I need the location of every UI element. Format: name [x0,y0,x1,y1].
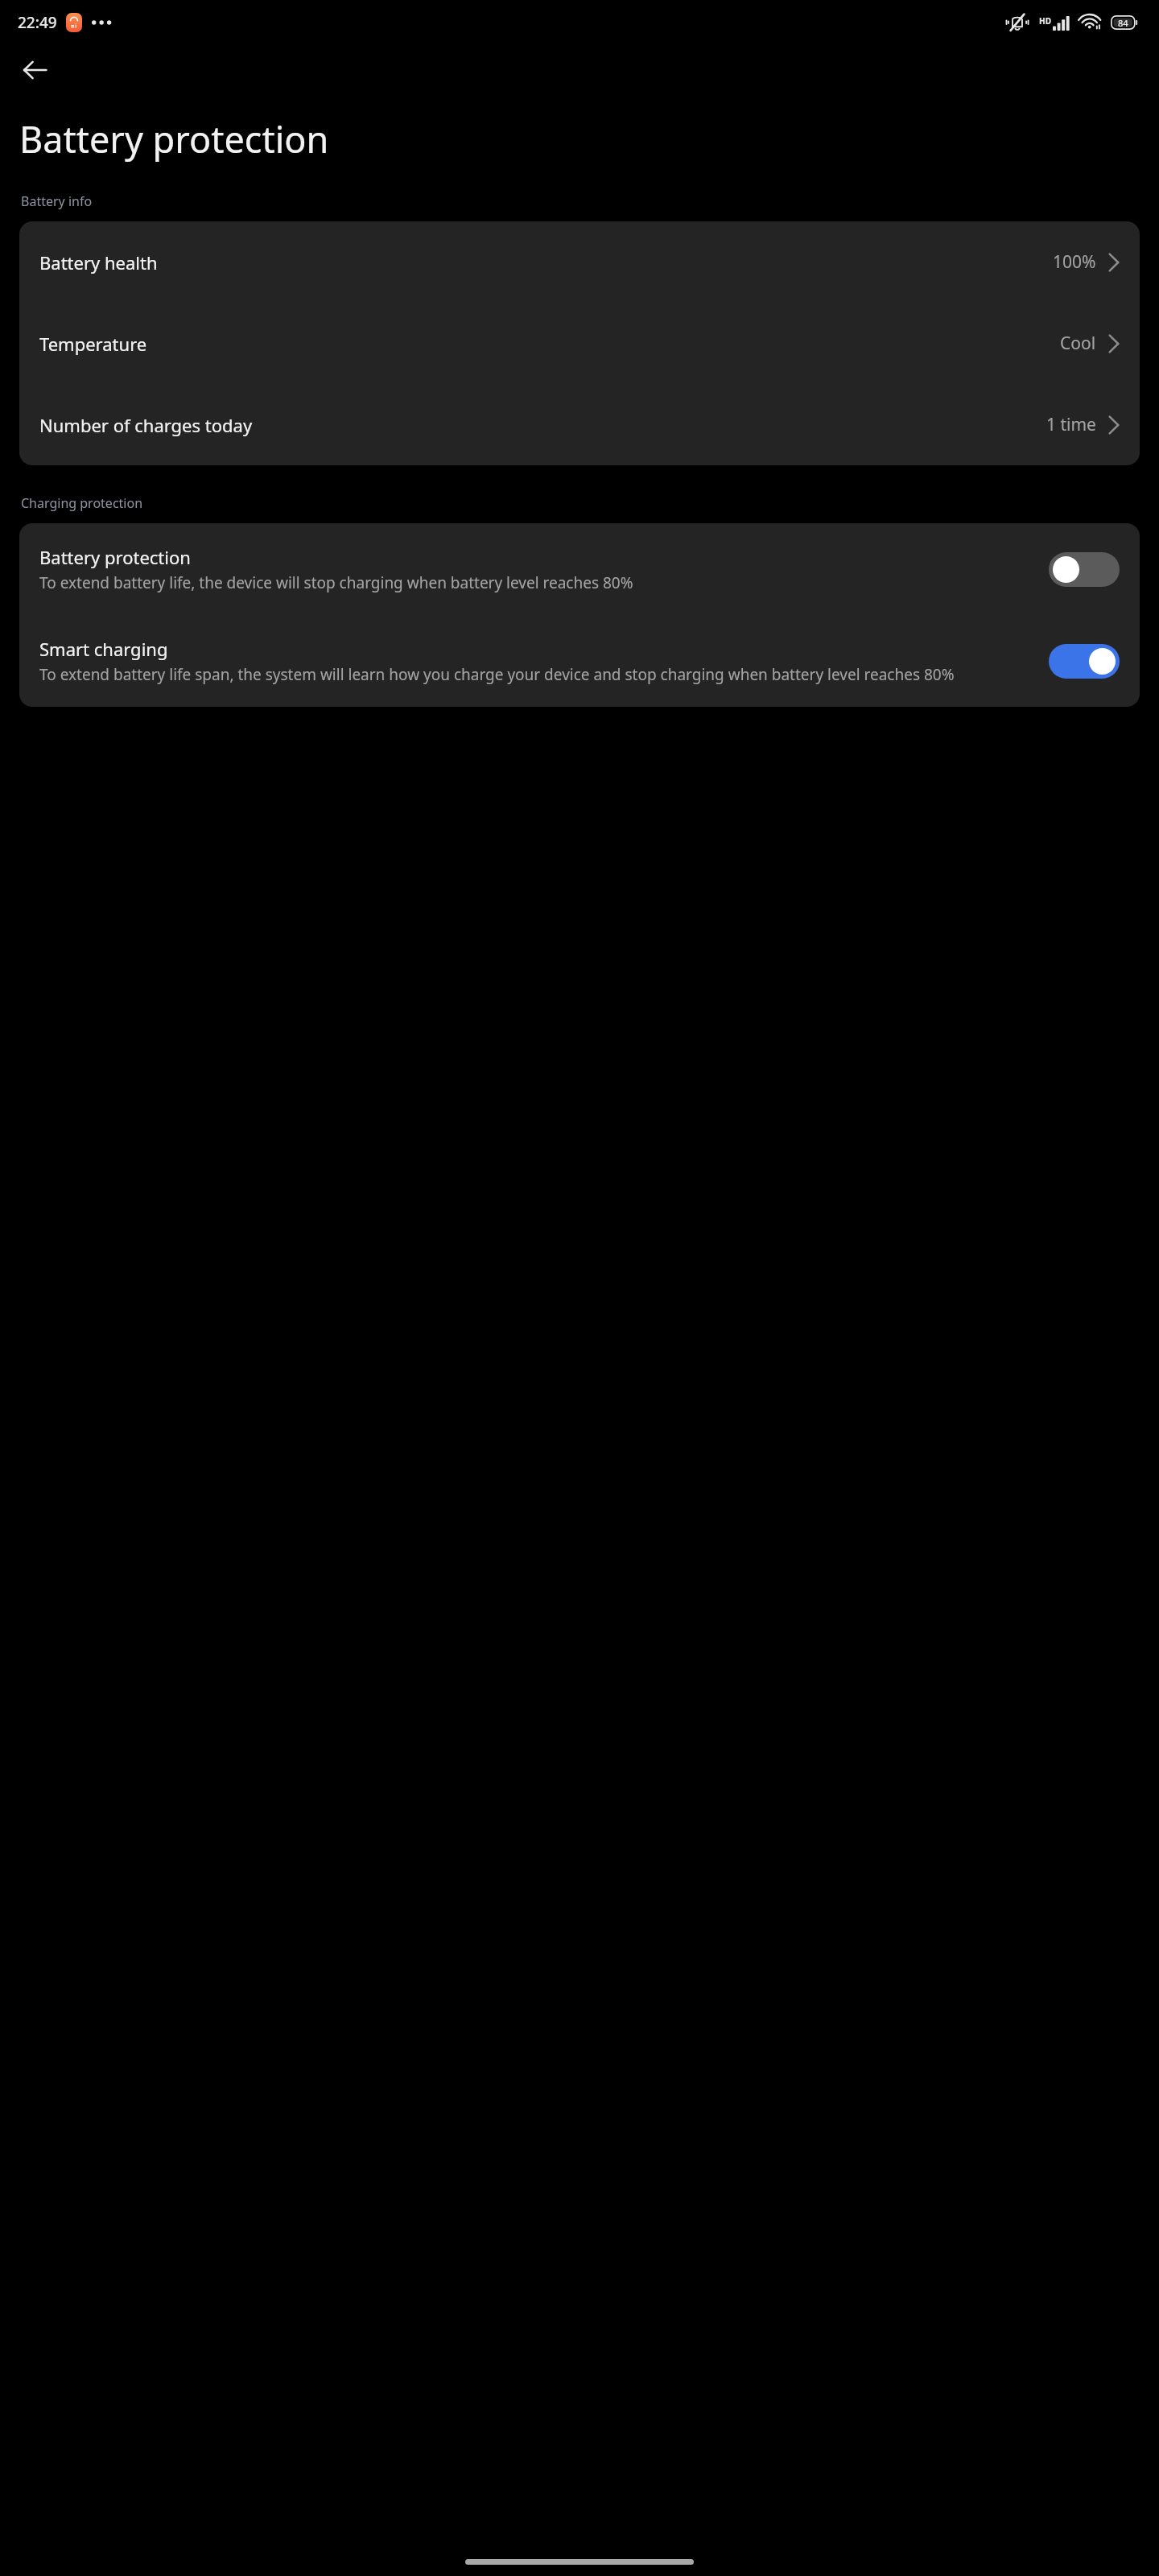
staticText: Battery protection [39,545,191,569]
button[interactable]: Number of charges today [19,384,1140,465]
staticText: Battery protection [19,114,329,163]
button[interactable]: Disabled [1049,552,1120,587]
staticText: Number of charges today [39,413,253,437]
staticText: HD [1039,15,1051,27]
button[interactable]: Enabled [1049,644,1120,679]
staticText: Smart charging [39,637,168,661]
staticText: Battery health [39,250,158,275]
staticText: Battery info [21,192,93,210]
button[interactable]: Smart charging [19,615,1140,707]
button[interactable]: Temperature [19,303,1140,384]
staticText: Cool [1060,332,1096,355]
staticText: To extend battery life, the device will … [39,572,633,593]
staticText: Temperature [39,332,147,356]
staticText: To extend battery life span, the system … [39,664,955,685]
button[interactable]: Battery health [19,221,1140,303]
staticText: Charging protection [21,494,143,512]
staticText: 1 time [1046,413,1096,436]
staticText: 22:49 [18,12,57,33]
staticText: 84 [1118,17,1128,29]
button[interactable]: Back [11,47,58,93]
button[interactable]: Battery protection [19,523,1140,615]
staticText: 100% [1053,250,1096,274]
